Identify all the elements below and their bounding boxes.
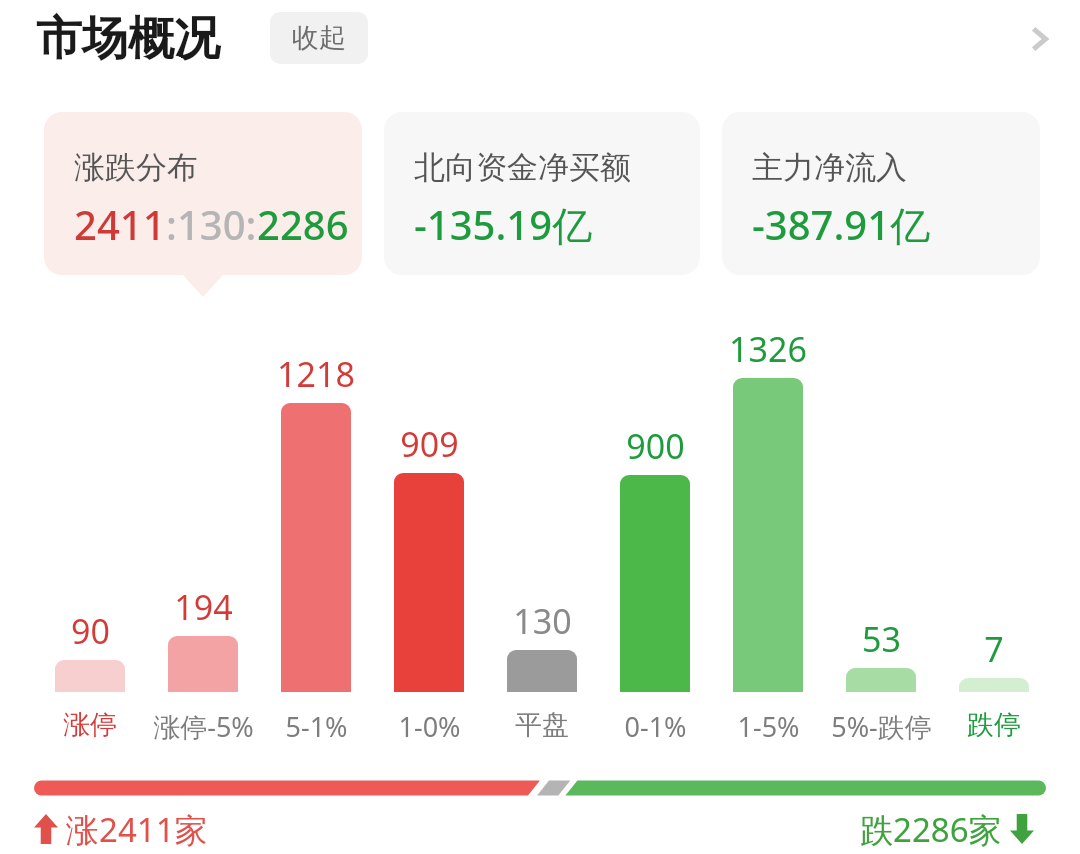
staticText: 平盘 — [515, 708, 569, 742]
staticText: 194 — [174, 584, 233, 630]
button[interactable] — [846, 668, 916, 692]
staticText: -387.91亿 — [752, 197, 931, 252]
staticText: 跌停 — [967, 708, 1021, 742]
button[interactable] — [281, 403, 351, 692]
staticText: 收起 — [292, 21, 346, 55]
button[interactable] — [394, 473, 464, 692]
staticText: 市场概况 — [36, 10, 220, 68]
staticText: 涨跌分布 — [74, 148, 198, 187]
staticText: 1218 — [277, 351, 355, 397]
button[interactable]: 涨跌分布 — [44, 112, 362, 275]
staticText: 90 — [71, 608, 110, 654]
staticText: 900 — [626, 423, 685, 469]
staticText: 1326 — [729, 326, 807, 372]
staticText: 130 — [513, 598, 572, 644]
staticText: 53 — [862, 616, 901, 662]
button[interactable]: 北向资金净买额 — [384, 112, 700, 275]
staticText: 跌2286家 — [860, 807, 1002, 852]
staticText: 2286 — [257, 197, 349, 251]
staticText: 909 — [400, 421, 459, 467]
button[interactable] — [168, 636, 238, 692]
button[interactable]: 更多 — [1014, 14, 1064, 64]
button[interactable] — [620, 475, 690, 692]
staticText: 5-1% — [285, 708, 348, 745]
staticText: -135.19亿 — [414, 197, 593, 252]
staticText: 主力净流入 — [752, 148, 907, 187]
staticText: 1-5% — [737, 708, 800, 745]
staticText: 北向资金净买额 — [414, 148, 631, 187]
button[interactable] — [733, 378, 803, 692]
button[interactable]: 市场概况 — [34, 8, 222, 70]
staticText: 涨停-5% — [153, 708, 254, 745]
staticText: 涨2411家 — [66, 807, 208, 852]
button[interactable]: 主力净流入 — [722, 112, 1040, 275]
staticText: 1-0% — [398, 708, 461, 745]
button[interactable] — [55, 660, 125, 692]
button[interactable] — [959, 678, 1029, 692]
staticText: 5%-跌停 — [831, 708, 932, 745]
staticText: :130: — [166, 197, 257, 251]
staticText: 2411 — [74, 197, 166, 251]
button[interactable]: 涨跌家数比例 — [34, 778, 1046, 798]
button[interactable] — [507, 650, 577, 692]
staticText: 7 — [984, 626, 1004, 672]
button[interactable]: 收起 — [270, 12, 368, 64]
staticText: 0-1% — [624, 708, 687, 745]
staticText: 涨停 — [63, 708, 117, 742]
